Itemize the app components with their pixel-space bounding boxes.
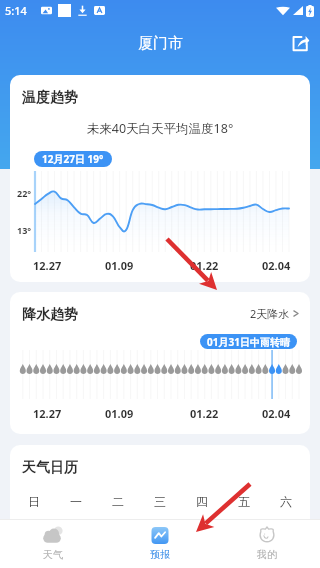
staticText: 2天降水 bbox=[250, 306, 290, 321]
staticText: 五 bbox=[223, 494, 265, 509]
staticText: 我的 bbox=[257, 548, 277, 561]
staticText: 01.22 bbox=[190, 258, 219, 272]
button[interactable]: 降水趋势 bbox=[10, 292, 310, 434]
staticText: 一 bbox=[55, 494, 97, 509]
staticText: 六 bbox=[265, 494, 307, 509]
staticText: 降水趋势 bbox=[22, 306, 78, 324]
staticText: 12.27 bbox=[33, 406, 62, 420]
button[interactable]: Share bbox=[284, 27, 316, 59]
staticText: 天气 bbox=[43, 548, 63, 561]
staticText: 01月31日中雨转晴 bbox=[207, 335, 290, 349]
staticText: 日 bbox=[13, 494, 55, 509]
staticText: 厦门市 bbox=[138, 34, 183, 53]
staticText: 02.04 bbox=[262, 406, 291, 420]
staticText: 01.09 bbox=[105, 258, 134, 272]
button[interactable]: 温度趋势 bbox=[10, 75, 310, 282]
staticText: 预报 bbox=[150, 548, 170, 561]
staticText: 02.04 bbox=[262, 258, 291, 272]
staticText: 12月27日 19° bbox=[42, 152, 104, 166]
staticText: 13° bbox=[17, 224, 32, 236]
staticText: 12.27 bbox=[33, 258, 62, 272]
staticText: 温度趋势 bbox=[22, 89, 78, 107]
staticText: 天气日历 bbox=[22, 459, 78, 477]
staticText: 四 bbox=[181, 494, 223, 509]
button[interactable]: 预报 bbox=[106, 520, 213, 568]
staticText: 未来40天白天平均温度18° bbox=[10, 120, 310, 137]
button[interactable]: 2天降水 bbox=[250, 306, 299, 321]
staticText: 01.22 bbox=[190, 406, 219, 420]
staticText: 01.09 bbox=[105, 406, 134, 420]
button[interactable]: 我的 bbox=[213, 520, 320, 568]
staticText: 三 bbox=[139, 494, 181, 509]
button[interactable]: 天气日历 bbox=[10, 445, 310, 545]
button[interactable]: 天气 bbox=[0, 520, 106, 568]
staticText: 二 bbox=[97, 494, 139, 509]
staticText: 22° bbox=[17, 187, 32, 199]
staticText: 5:14 bbox=[5, 3, 27, 18]
